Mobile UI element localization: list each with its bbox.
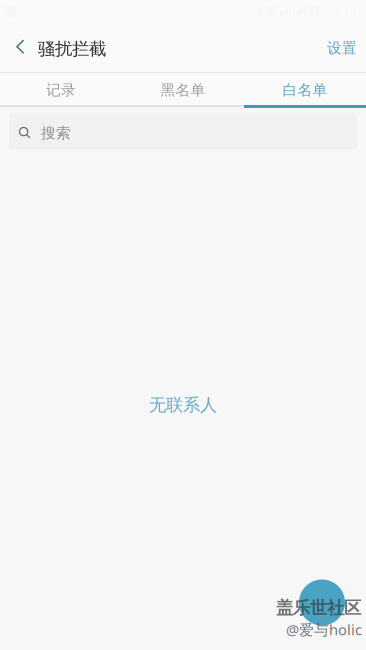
staticText: @爱与holic [286, 620, 362, 639]
staticText: 白名单 [282, 81, 327, 99]
staticText: 记录 [46, 81, 76, 99]
staticText: 无联系人 [149, 394, 217, 416]
staticText: 设置 [327, 39, 357, 57]
button[interactable]: 记录 [0, 73, 122, 105]
button[interactable]: 设置 [327, 22, 366, 72]
button[interactable]: 黑名单 [122, 73, 244, 105]
button[interactable]: 白名单 [244, 73, 366, 105]
staticText: 盖乐世社区 [276, 597, 361, 619]
staticText: 黑名单 [160, 81, 205, 99]
staticText: 搜索 [41, 124, 71, 142]
button[interactable]: 搜索 [9, 113, 357, 149]
staticText: 骚扰拦截 [38, 38, 106, 60]
button[interactable]: Back [0, 22, 38, 72]
